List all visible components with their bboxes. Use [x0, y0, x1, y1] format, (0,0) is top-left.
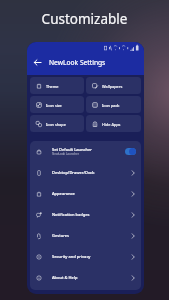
button[interactable]: Notification badges: [30, 204, 141, 225]
button[interactable]: Appearance: [30, 183, 141, 204]
staticText: Notification badges: [52, 212, 90, 217]
button[interactable]: About & Help: [30, 267, 141, 288]
staticText: Appearance: [52, 191, 75, 196]
staticText: Theme: [46, 84, 59, 89]
button[interactable]: Hide Apps: [86, 115, 141, 132]
button[interactable]: Theme: [30, 77, 84, 94]
staticText: NewLook Settings: [49, 58, 106, 67]
staticText: Icon pack: [102, 103, 120, 108]
staticText: Set Default Launcher: [52, 147, 93, 152]
staticText: Icon size: [46, 103, 62, 108]
button[interactable]: Icon shape: [30, 115, 84, 132]
button[interactable]: Icon pack: [86, 96, 141, 113]
button[interactable]: Back: [33, 58, 42, 67]
staticText: Icon shape: [46, 122, 66, 127]
button[interactable]: Wallpapers: [86, 77, 141, 94]
staticText: Wallpapers: [102, 84, 123, 89]
staticText: Hide Apps: [102, 122, 121, 127]
button[interactable]: Security and privacy: [30, 246, 141, 267]
staticText: Security and privacy: [52, 254, 91, 259]
button[interactable]: Gestures: [30, 225, 141, 246]
button[interactable]: Set Default Launcher: [30, 141, 141, 162]
staticText: NewLook Launcher: [52, 152, 80, 156]
staticText: About & Help: [52, 275, 78, 280]
button[interactable]: Icon size: [30, 96, 84, 113]
button[interactable]: Toggle default launcher: [125, 148, 136, 155]
staticText: Customizable: [0, 10, 169, 28]
button[interactable]: Desktop/Drawer/Dock: [30, 162, 141, 183]
staticText: Gestures: [52, 233, 70, 238]
staticText: Desktop/Drawer/Dock: [52, 170, 95, 175]
